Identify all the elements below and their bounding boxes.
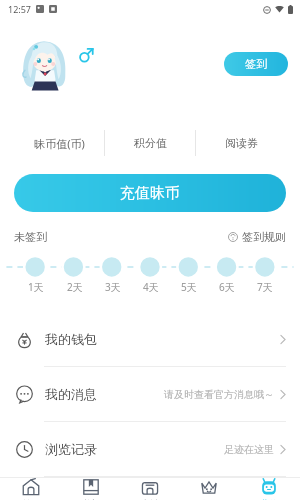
button[interactable]: 我的消息 [0,367,300,421]
button[interactable]: Gender male [78,47,94,63]
staticText: 积分值 [134,136,167,150]
staticText: 12:57 [8,3,32,15]
staticText: 昧币值(币) [34,136,85,151]
staticText: 商城 [141,498,159,500]
button[interactable]: 我的钱包 [0,312,300,366]
button[interactable]: 1天 [16,280,55,294]
staticText: 阅读券 [225,136,258,150]
button[interactable]: Avatar [16,39,72,95]
staticText: 足迹在这里 [224,443,274,456]
staticText: 未签到 [14,230,47,244]
staticText: 1天 [28,280,44,294]
button[interactable]: 我的 [241,478,297,500]
button[interactable]: 5天 [170,280,208,294]
button[interactable]: 浏览记录 [0,422,300,476]
button[interactable]: 3天 [94,280,132,294]
button[interactable]: 发现 [181,478,237,500]
staticText: 签到 [245,57,267,71]
staticText: 4天 [143,280,159,294]
staticText: 2天 [67,280,83,294]
button[interactable]: 2天 [55,280,94,294]
button[interactable]: 首页 [3,478,59,500]
staticText: 首页 [22,498,40,500]
staticText: 浏览记录 [45,441,97,457]
button[interactable]: 6天 [208,280,246,294]
staticText: 6天 [219,280,235,294]
button[interactable]: 书架 [63,478,119,500]
button[interactable]: 签到 [224,52,288,76]
staticText: 书架 [82,498,100,500]
button[interactable]: 7天 [246,280,284,294]
button[interactable]: 昧币值(币) [14,126,104,160]
button[interactable]: 签到规则 [228,230,286,244]
staticText: 3天 [105,280,121,294]
staticText: 5天 [181,280,197,294]
staticText: 请及时查看官方消息哦～ [164,388,274,401]
staticText: 签到规则 [242,230,286,244]
button[interactable]: 阅读券 [196,126,286,160]
button[interactable]: 4天 [132,280,170,294]
staticText: 我的 [260,498,278,500]
staticText: 充值昧币 [120,184,180,203]
button[interactable]: 积分值 [105,126,195,160]
staticText: 我的消息 [45,386,97,402]
button[interactable]: 商城 [122,478,178,500]
button[interactable]: 充值昧币 [14,174,286,212]
staticText: 我的钱包 [45,331,97,347]
staticText: 7天 [257,280,273,294]
